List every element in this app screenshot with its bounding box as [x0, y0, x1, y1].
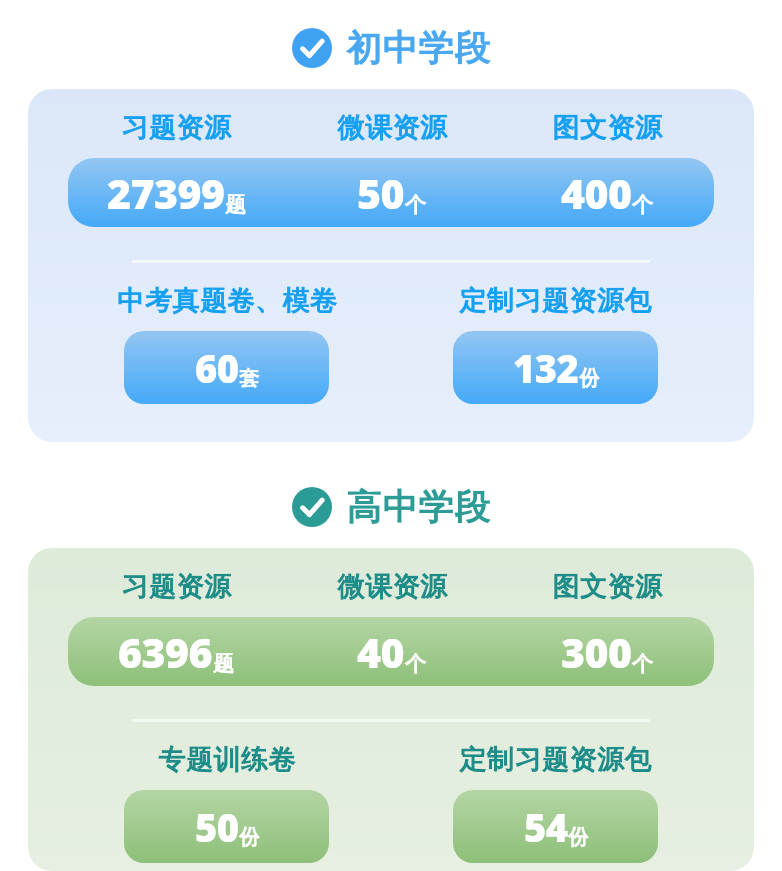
staticText: 个: [632, 651, 653, 677]
button[interactable]: 60: [124, 331, 329, 404]
staticText: 专题训练卷: [158, 743, 296, 777]
staticText: 定制习题资源包: [459, 284, 652, 318]
button[interactable]: 6396: [68, 617, 714, 686]
staticText: 个: [405, 192, 426, 218]
staticText: 400: [561, 165, 632, 221]
staticText: 题: [213, 651, 234, 677]
staticText: 微课资源: [337, 570, 447, 604]
staticText: 图文资源: [552, 111, 662, 145]
staticText: 个: [632, 192, 653, 218]
button[interactable]: 初中学段: [0, 24, 782, 72]
staticText: 微课资源: [337, 111, 447, 145]
staticText: 份: [568, 825, 588, 850]
staticText: 定制习题资源包: [459, 743, 652, 777]
staticText: 300: [561, 624, 632, 680]
button[interactable]: 27399: [68, 158, 714, 227]
staticText: 个: [405, 651, 426, 677]
staticText: 习题资源: [121, 111, 231, 145]
staticText: 27399: [107, 165, 225, 221]
staticText: 习题资源: [121, 570, 231, 604]
staticText: 高中学段: [346, 485, 490, 529]
staticText: 套: [239, 366, 259, 391]
staticText: 50: [195, 801, 239, 853]
other: 学段资源统计: [0, 0, 782, 871]
staticText: 60: [195, 342, 239, 394]
button[interactable]: 132: [453, 331, 658, 404]
staticText: 6396: [118, 624, 213, 680]
button[interactable]: 54: [453, 790, 658, 863]
staticText: 132: [513, 342, 579, 394]
staticText: 54: [524, 801, 568, 853]
button[interactable]: 高中学段: [0, 483, 782, 531]
staticText: 中考真题卷、模卷: [117, 284, 337, 318]
staticText: 50: [357, 165, 405, 221]
staticText: 份: [239, 825, 259, 850]
staticText: 题: [225, 192, 246, 218]
staticText: 份: [579, 366, 599, 391]
staticText: 图文资源: [552, 570, 662, 604]
staticText: 初中学段: [346, 26, 490, 70]
button[interactable]: 50: [124, 790, 329, 863]
staticText: 40: [357, 624, 405, 680]
